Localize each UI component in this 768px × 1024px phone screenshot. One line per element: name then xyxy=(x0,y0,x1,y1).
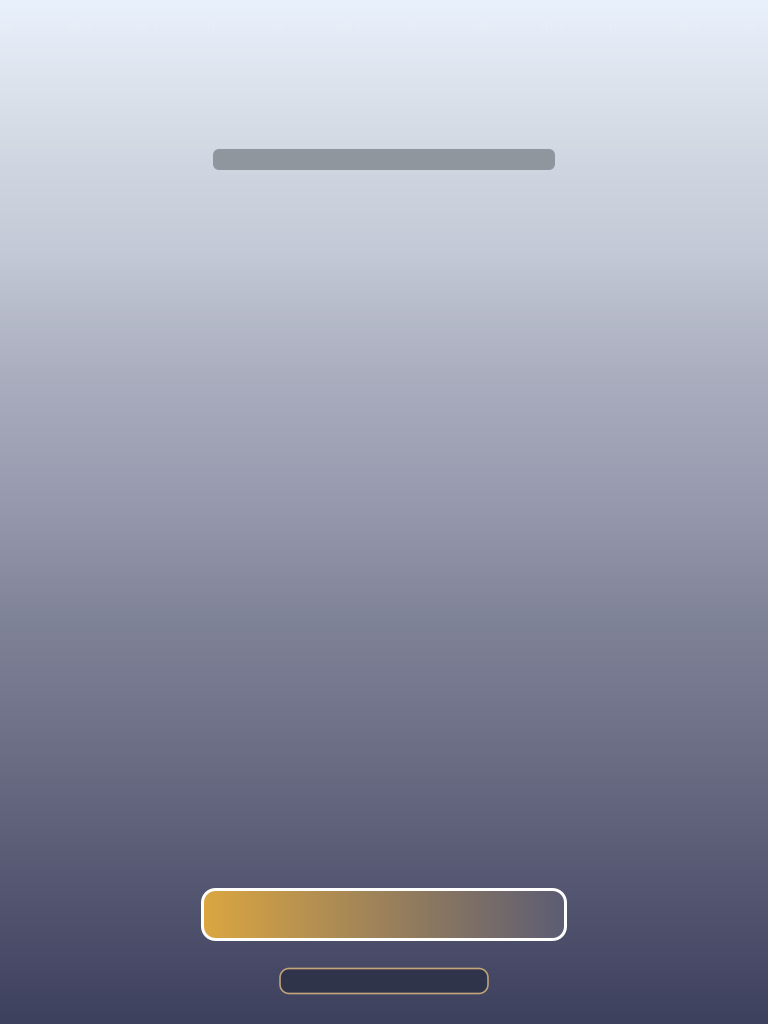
button[interactable]: Secondary action xyxy=(279,968,488,994)
button[interactable]: Continue xyxy=(201,888,566,941)
